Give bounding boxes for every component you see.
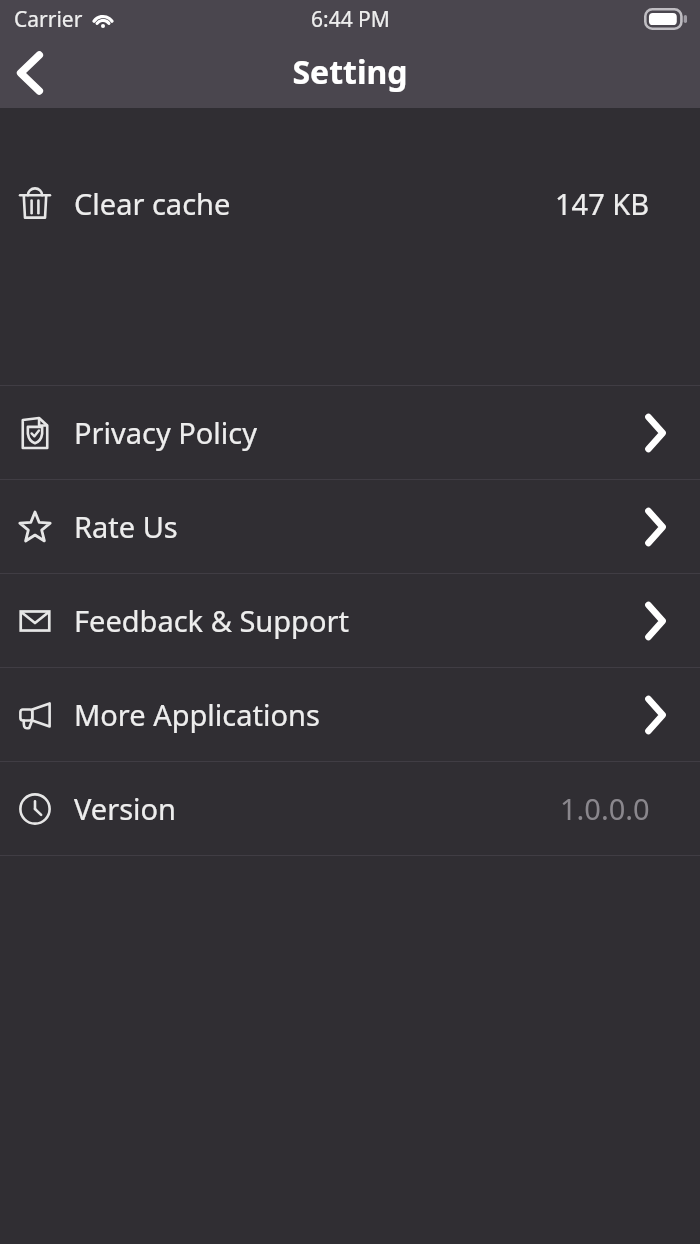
staticText: Privacy Policy [74, 413, 258, 452]
staticText: Feedback & Support [74, 601, 349, 640]
staticText: 6:44 PM [311, 5, 390, 34]
button[interactable]: Back [0, 42, 62, 104]
staticText: 147 KB [555, 184, 650, 223]
staticText: 1.0.0.0 [560, 789, 650, 828]
button[interactable]: Feedback & Support [0, 574, 700, 667]
button[interactable]: Clear cache [0, 110, 700, 385]
staticText: More Applications [74, 695, 320, 734]
staticText: Version [74, 789, 176, 828]
staticText: Setting [292, 50, 408, 94]
button[interactable]: More Applications [0, 668, 700, 761]
staticText: Rate Us [74, 507, 178, 546]
button[interactable]: Rate Us [0, 480, 700, 573]
staticText: Clear cache [74, 184, 231, 223]
button[interactable]: Version [0, 762, 700, 855]
staticText: Carrier [14, 5, 83, 34]
button[interactable]: Privacy Policy [0, 386, 700, 479]
